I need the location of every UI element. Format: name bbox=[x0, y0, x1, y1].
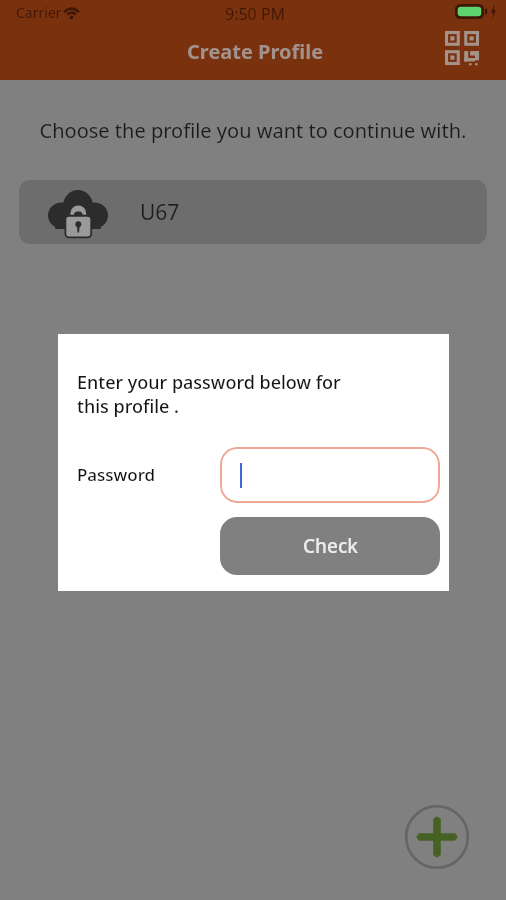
button[interactable]: U67 bbox=[19, 180, 487, 244]
button[interactable]: Check bbox=[220, 517, 440, 575]
button[interactable] bbox=[220, 447, 440, 503]
staticText: Choose the profile you want to continue … bbox=[0, 117, 506, 144]
staticText: Password bbox=[77, 463, 156, 486]
staticText: Carrier bbox=[16, 3, 62, 22]
staticText: Enter your password below for this profi… bbox=[77, 370, 341, 418]
staticText: 9:50 PM bbox=[225, 3, 286, 25]
staticText: Check bbox=[303, 533, 358, 559]
staticText: Create Profile bbox=[187, 38, 324, 65]
button[interactable]: Scan QR code bbox=[438, 24, 486, 72]
button[interactable]: Add profile bbox=[404, 804, 470, 870]
staticText: U67 bbox=[140, 198, 180, 227]
